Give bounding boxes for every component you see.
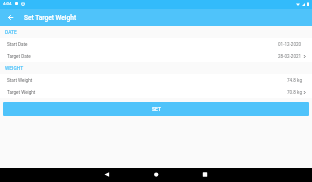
staticText: Target Date bbox=[7, 54, 31, 59]
staticText: 70.8 kg bbox=[287, 90, 302, 95]
staticText: 01-12-2020 bbox=[278, 42, 302, 47]
staticText: Target Weight bbox=[7, 90, 36, 95]
staticText: Start Date bbox=[7, 42, 28, 47]
staticText: WEIGHT bbox=[5, 65, 24, 71]
button[interactable]: Start Date bbox=[0, 38, 312, 50]
button[interactable]: Target Weight bbox=[0, 86, 312, 98]
button[interactable]: Target Date bbox=[0, 50, 312, 62]
staticText: 28-02-2021 bbox=[278, 54, 302, 59]
staticText: Start Weight bbox=[7, 78, 33, 83]
button[interactable]: SET bbox=[3, 102, 309, 116]
button[interactable]: Back bbox=[0, 9, 20, 26]
staticText: SET bbox=[152, 106, 161, 112]
staticText: DATE bbox=[5, 29, 17, 35]
button[interactable]: Start Weight bbox=[0, 74, 312, 86]
staticText: 4:04 bbox=[3, 1, 12, 6]
staticText: Set Target Weight bbox=[24, 14, 77, 22]
staticText: 74.8 kg bbox=[287, 78, 302, 83]
